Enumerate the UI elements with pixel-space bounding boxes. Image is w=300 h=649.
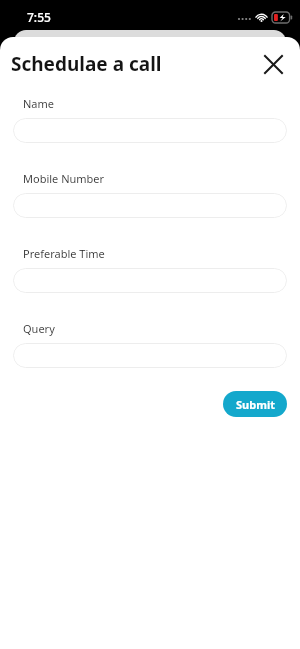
staticText: Query xyxy=(23,321,55,336)
button[interactable] xyxy=(13,343,287,368)
staticText: Mobile Number xyxy=(23,171,105,186)
button[interactable] xyxy=(13,118,287,143)
button[interactable] xyxy=(13,268,287,293)
staticText: Preferable Time xyxy=(23,246,105,261)
staticText: Submit xyxy=(236,397,275,412)
staticText: Name xyxy=(23,96,55,111)
staticText: Schedulae a call xyxy=(11,51,257,77)
staticText: 7:55 xyxy=(27,9,51,25)
button[interactable]: Submit xyxy=(223,391,287,417)
button[interactable]: Close xyxy=(257,48,289,80)
button[interactable] xyxy=(13,193,287,218)
